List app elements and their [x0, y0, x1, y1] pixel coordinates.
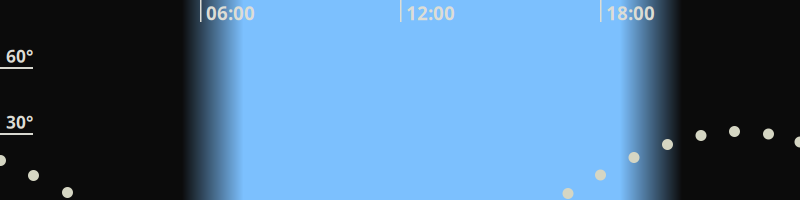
staticText: 06:00 — [206, 0, 255, 25]
staticText: 18:00 — [606, 0, 655, 25]
staticText: 60° — [6, 44, 33, 67]
staticText: 30° — [6, 110, 33, 133]
button[interactable]: Moon elevation chart, 24 hours — [0, 0, 800, 200]
staticText: 12:00 — [406, 0, 455, 25]
